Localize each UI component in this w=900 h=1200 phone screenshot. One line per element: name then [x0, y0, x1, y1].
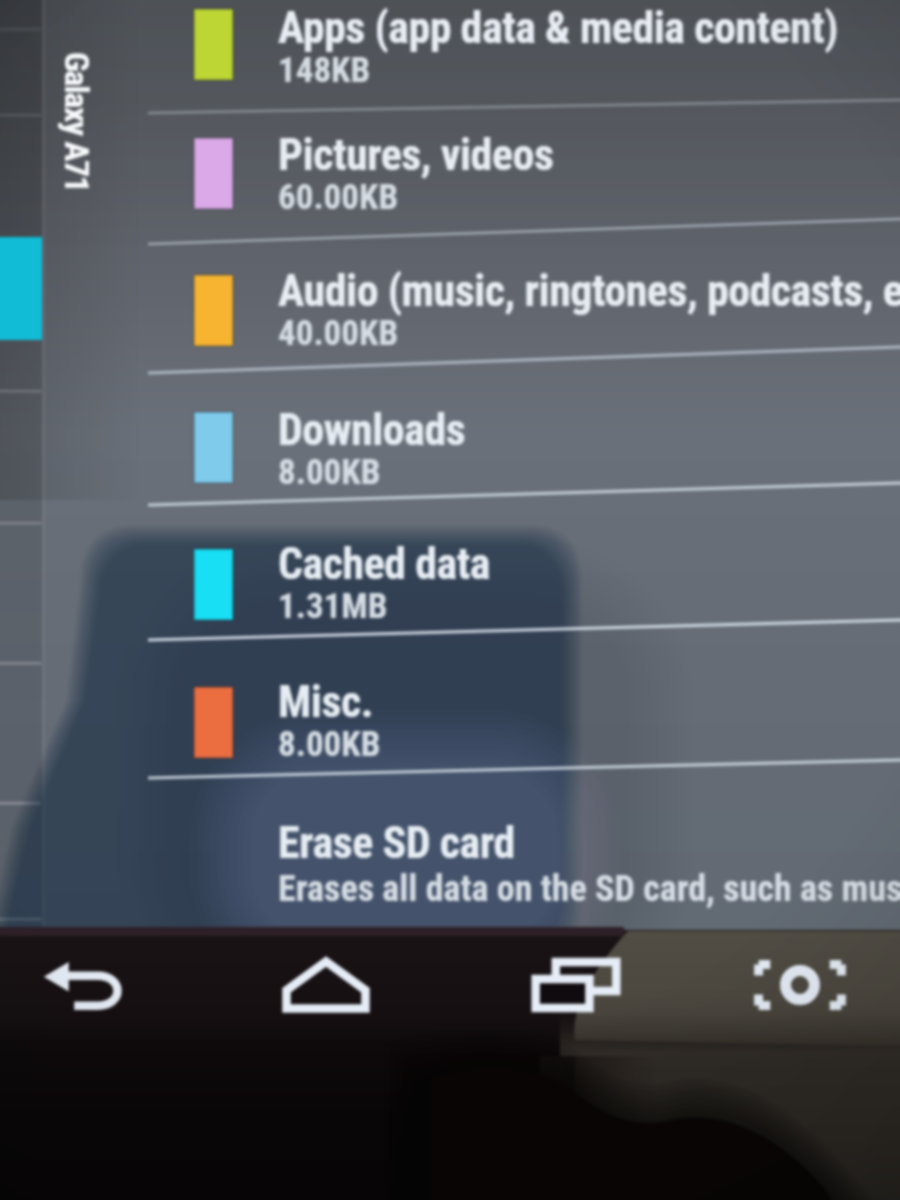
- staticText: Erases all data on the SD card, such as …: [278, 868, 900, 910]
- staticText: 1.31MB: [278, 586, 388, 627]
- staticText: Galaxy A71: [57, 52, 97, 192]
- staticText: Misc.: [278, 676, 374, 728]
- staticText: Cached data: [278, 538, 491, 590]
- staticText: Audio (music, ringtones, podcasts, etc.): [278, 265, 900, 317]
- staticText: Pictures, videos: [278, 129, 554, 181]
- button[interactable]: Home: [264, 942, 388, 1028]
- button[interactable]: Audio (music, ringtones, podcasts, etc.): [0, 244, 900, 373]
- staticText: Downloads: [278, 404, 466, 456]
- button[interactable]: Pictures, videos: [0, 113, 900, 244]
- button[interactable]: Erase SD card: [0, 778, 900, 938]
- staticText: 148KB: [278, 50, 371, 91]
- staticText: 8.00KB: [278, 452, 381, 493]
- button[interactable]: Cached data: [0, 505, 900, 640]
- staticText: 40.00KB: [278, 313, 399, 354]
- staticText: 60.00KB: [278, 177, 399, 218]
- button[interactable]: Apps (app data & media content): [0, 0, 900, 113]
- button[interactable]: Screenshot: [738, 942, 862, 1028]
- staticText: Erase SD card: [278, 817, 515, 869]
- button[interactable]: Back: [20, 942, 144, 1028]
- button[interactable]: Downloads: [0, 373, 900, 505]
- staticText: 8.00KB: [278, 724, 381, 765]
- button[interactable]: Recent apps: [514, 942, 638, 1028]
- staticText: Apps (app data & media content): [278, 2, 838, 54]
- button[interactable]: Misc.: [0, 640, 900, 778]
